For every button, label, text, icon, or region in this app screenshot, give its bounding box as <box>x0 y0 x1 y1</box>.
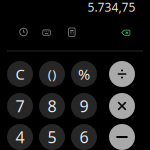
button[interactable]: Calculator <box>63 24 81 40</box>
button[interactable]: 5 <box>39 124 65 150</box>
button[interactable]: C <box>7 61 33 87</box>
button[interactable]: 7 <box>7 93 33 119</box>
staticText: ( <box>48 65 52 83</box>
staticText: 8 <box>47 95 56 117</box>
button[interactable]: Delete <box>117 25 135 41</box>
button[interactable]: History <box>14 24 32 40</box>
button[interactable]: 9 <box>71 93 97 119</box>
staticText: C <box>15 64 24 84</box>
button[interactable]: Divide <box>109 61 135 87</box>
staticText: 7 <box>15 95 24 117</box>
button[interactable]: Keyboard <box>38 25 56 41</box>
staticText: 4 <box>15 126 24 148</box>
staticText: 9 <box>79 95 88 117</box>
staticText: % <box>78 64 90 84</box>
button[interactable]: Minus <box>109 124 135 150</box>
button[interactable]: 4 <box>7 124 33 150</box>
button[interactable]: ( <box>39 61 65 87</box>
button[interactable]: 6 <box>71 124 97 150</box>
staticText: ) <box>52 65 56 83</box>
button[interactable]: Multiply <box>109 93 135 119</box>
staticText: 5.734,75 <box>87 0 135 15</box>
button[interactable]: 8 <box>39 93 65 119</box>
button[interactable]: % <box>71 61 97 87</box>
staticText: 6 <box>79 126 88 148</box>
staticText: 5 <box>47 126 56 148</box>
